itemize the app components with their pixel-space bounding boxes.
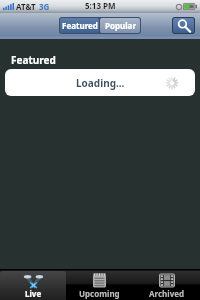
staticText: AT&T (16, 1, 36, 12)
staticText: Loading... (76, 76, 125, 90)
button[interactable]: Upcoming (66, 271, 133, 300)
button[interactable]: Popular (100, 18, 140, 33)
button[interactable]: Search (173, 18, 194, 33)
staticText: Live (25, 288, 42, 299)
staticText: Popular (105, 20, 136, 31)
button[interactable]: Loading... (5, 69, 195, 96)
staticText: 3G (39, 1, 50, 12)
button[interactable]: Featured (60, 18, 99, 33)
staticText: Featured (11, 53, 56, 67)
staticText: 5:13 PM (85, 0, 116, 11)
staticText: Upcoming (79, 288, 120, 299)
staticText: Archived (149, 288, 185, 299)
staticText: Featured (62, 20, 98, 31)
button[interactable]: Live (0, 271, 66, 300)
button[interactable]: Archived (133, 271, 200, 300)
